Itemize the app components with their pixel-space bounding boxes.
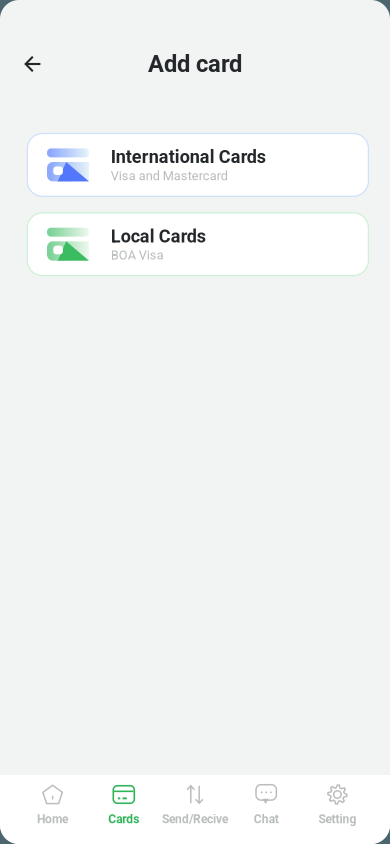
staticText: Add card (148, 50, 242, 78)
staticText: Setting (318, 812, 356, 826)
button[interactable]: Setting (302, 784, 373, 826)
staticText: BOA Visa (111, 248, 164, 263)
staticText: Home (37, 812, 68, 826)
button[interactable]: Back (12, 43, 54, 85)
staticText: Send/Recive (162, 812, 228, 826)
button[interactable]: Cards (88, 784, 159, 826)
button[interactable]: Send/Recive (159, 784, 231, 826)
button[interactable]: Local Cards (27, 213, 368, 276)
staticText: Cards (108, 812, 139, 826)
staticText: Visa and Mastercard (111, 168, 228, 183)
staticText: International Cards (111, 146, 266, 167)
button[interactable]: Chat (231, 784, 302, 826)
button[interactable]: International Cards (27, 133, 368, 196)
staticText: Chat (254, 812, 279, 826)
button[interactable]: Home (17, 784, 88, 826)
staticText: Local Cards (111, 226, 206, 247)
